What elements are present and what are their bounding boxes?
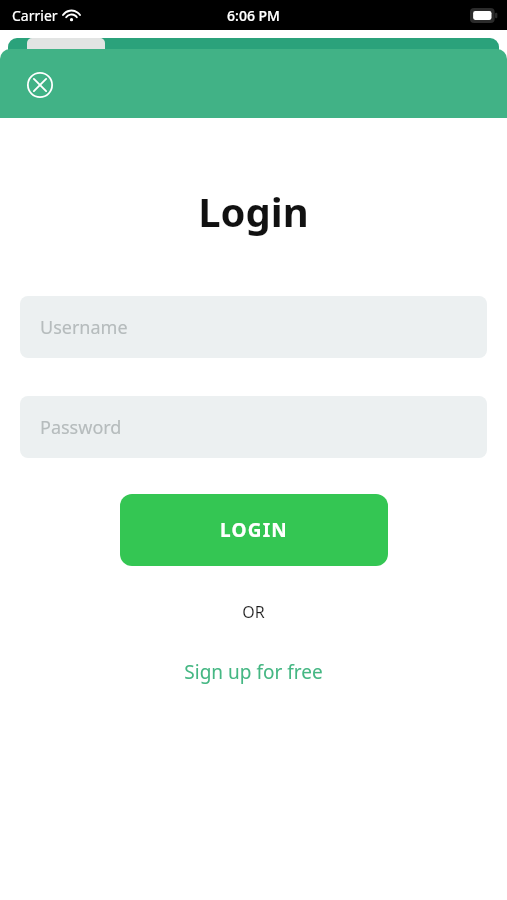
staticText: 6:06 PM: [227, 6, 280, 25]
button[interactable]: Close: [22, 67, 58, 103]
staticText: Username: [40, 315, 128, 340]
staticText: Login: [198, 184, 309, 238]
button[interactable]: Sign up for free: [176, 655, 331, 689]
button[interactable]: LOGIN: [120, 494, 388, 566]
staticText: Password: [40, 415, 122, 440]
button[interactable]: Password: [20, 396, 487, 458]
staticText: LOGIN: [220, 517, 288, 543]
staticText: Carrier: [12, 6, 58, 25]
staticText: Sign up for free: [184, 659, 323, 685]
button[interactable]: Username: [20, 296, 487, 358]
staticText: OR: [242, 601, 265, 623]
